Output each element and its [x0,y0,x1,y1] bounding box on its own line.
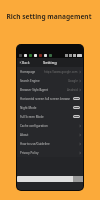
staticText: How to use/Guideline [20,142,78,146]
button[interactable]: Search Engine [17,76,83,85]
staticText: Horizontal screen full screen browse [20,97,73,101]
button[interactable]: About [17,130,83,139]
button[interactable]: Cache configuration [17,121,83,130]
staticText: Rich setting management [0,12,99,21]
staticText: Night Mode [20,106,73,110]
staticText: Full Screen Mode [20,115,73,119]
button[interactable]: Browser Style/Agent [17,85,83,94]
button[interactable]: Horizontal screen full screen browse [17,94,83,103]
button[interactable]: Full Screen Mode [17,112,83,121]
staticText: Google [68,79,78,83]
staticText: Cache configuration [20,124,78,128]
staticText: About [20,133,78,137]
button[interactable]: Homepage [17,67,83,76]
staticText: https://www.google.com [44,70,78,74]
button[interactable]: Back [17,58,35,67]
staticText: Homepage [20,70,44,74]
staticText: Privacy Policy [20,151,78,155]
button[interactable]: Night Mode [17,103,83,112]
button[interactable] [17,176,83,182]
staticText: Back [22,60,30,65]
staticText: Setting [43,60,57,65]
button[interactable]: How to use/Guideline [17,139,83,148]
staticText: Search Engine [20,79,68,83]
staticText: Android [67,88,78,92]
staticText: Browser Style/Agent [20,88,67,92]
button[interactable]: Privacy Policy [17,148,83,157]
